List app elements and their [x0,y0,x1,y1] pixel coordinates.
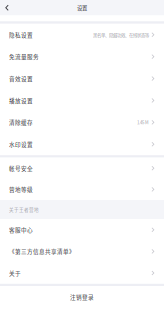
staticText: 设置 [77,4,87,12]
button[interactable]: 播放设置 [0,89,164,111]
staticText: 水印设置 [9,140,33,148]
button[interactable]: 隐私设置 [0,24,164,46]
staticText: 音效设置 [9,74,33,83]
staticText: 营地等级 [9,185,33,193]
button[interactable]: 清除缓存 [0,111,164,133]
staticText: 黑名单、隐藏功效、在线状态等 [93,32,149,38]
staticText: 关于王者营地 [9,206,39,213]
button[interactable]: 关于 [0,262,164,284]
staticText: 播放设置 [9,96,33,104]
staticText: 注销登录 [70,293,94,301]
staticText: 免流量服务 [9,53,39,61]
button[interactable]: 免流量服务 [0,46,164,68]
button[interactable]: Back [0,0,14,15]
button[interactable]: 帐号安全 [0,158,164,179]
button[interactable]: 营地等级 [0,179,164,200]
staticText: 1.45 M [137,119,149,126]
button[interactable]: 《第三方信息共享清单》 [0,241,164,262]
staticText: 客服中心 [9,226,33,234]
staticText: 帐号安全 [9,164,33,172]
button[interactable]: 水印设置 [0,133,164,155]
staticText: 隐私设置 [9,31,33,39]
button[interactable]: 客服中心 [0,219,164,241]
staticText: 《第三方信息共享清单》 [9,247,75,255]
button[interactable]: 注销登录 [0,286,164,308]
staticText: 清除缓存 [9,118,33,126]
button[interactable]: 音效设置 [0,68,164,89]
staticText: 关于 [9,269,21,277]
